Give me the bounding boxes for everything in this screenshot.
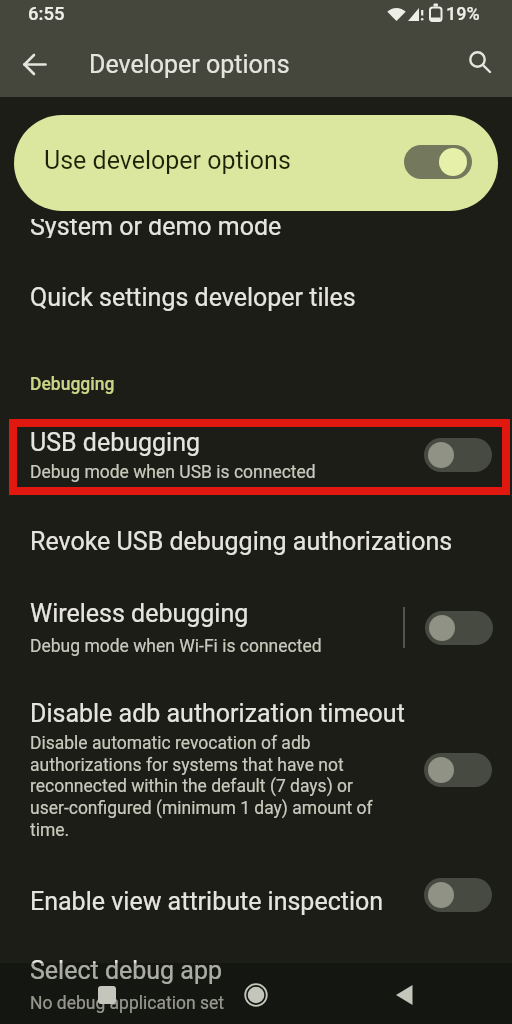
staticText: Developer options	[89, 50, 290, 79]
staticText: 6:55	[28, 3, 65, 25]
button[interactable]	[404, 145, 472, 179]
staticText: time.	[30, 820, 70, 841]
button[interactable]	[0, 418, 512, 495]
staticText: Enable view attribute inspection	[30, 887, 384, 916]
staticText: Wireless debugging	[30, 599, 249, 628]
button[interactable]	[0, 212, 512, 268]
staticText: USB debugging	[30, 428, 201, 457]
button[interactable]	[394, 983, 414, 1007]
staticText: reconnected within the default (7 days) …	[30, 776, 353, 797]
button[interactable]	[0, 683, 512, 848]
button[interactable]	[98, 986, 116, 1004]
staticText: Debugging	[30, 374, 115, 395]
staticText: Quick settings developer tiles	[30, 283, 356, 312]
staticText: Disable adb authorization timeout	[30, 699, 405, 728]
button[interactable]	[244, 983, 268, 1007]
button[interactable]	[14, 44, 56, 86]
button[interactable]	[425, 611, 493, 645]
button[interactable]	[0, 862, 512, 932]
button[interactable]	[424, 878, 492, 912]
staticText: user-configured (minimum 1 day) amount o…	[30, 798, 373, 819]
staticText: Disable automatic revocation of adb	[30, 733, 311, 754]
staticText: authorizations for systems that have not	[30, 755, 344, 776]
button[interactable]	[0, 585, 512, 665]
button[interactable]: Use developer options	[14, 115, 498, 211]
staticText: Select debug app	[30, 956, 222, 985]
staticText: Revoke USB debugging authorizations	[30, 527, 453, 556]
staticText: Debug mode when USB is connected	[30, 462, 316, 483]
staticText: Debug mode when Wi-Fi is connected	[30, 636, 322, 657]
staticText: Use developer options	[44, 146, 291, 175]
button[interactable]	[0, 272, 512, 334]
button[interactable]	[0, 940, 512, 1024]
staticText: System or demo mode	[30, 219, 282, 238]
button[interactable]	[0, 505, 512, 575]
button[interactable]	[424, 753, 492, 787]
staticText: 19%	[446, 3, 480, 24]
button[interactable]	[458, 42, 502, 82]
staticText: No debug application set	[30, 993, 224, 1014]
button[interactable]	[424, 438, 492, 472]
